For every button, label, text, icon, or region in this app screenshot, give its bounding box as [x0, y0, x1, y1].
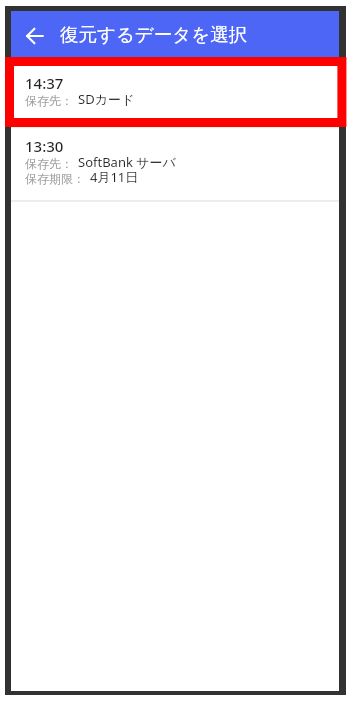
staticText: 保存先：	[25, 156, 73, 171]
staticText: 保存先：	[25, 93, 73, 108]
staticText: 保存期限：	[25, 171, 85, 186]
staticText: 4月11日	[90, 168, 139, 186]
staticText: SDカード	[78, 90, 135, 108]
staticText: 復元するデータを選択	[60, 23, 248, 46]
button[interactable]: 14:37	[11, 57, 339, 126]
staticText: 13:30	[25, 136, 64, 156]
staticText: SoftBank サーバ	[78, 153, 176, 171]
staticText: 14:37	[25, 73, 64, 93]
button[interactable]: 戻る	[11, 11, 57, 57]
button[interactable]: 13:30	[11, 128, 339, 200]
